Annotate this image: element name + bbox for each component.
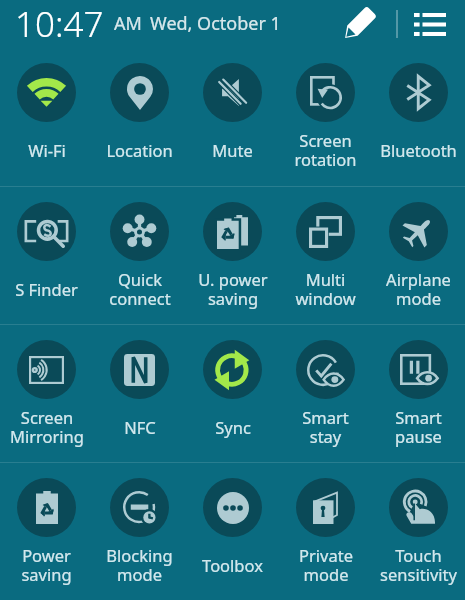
staticText: 10:47 — [15, 0, 104, 47]
staticText: Toolbox — [202, 554, 263, 576]
button[interactable]: Screen rotation — [279, 48, 372, 186]
button[interactable]: Power saving — [0, 463, 93, 600]
button[interactable]: Screen Mirroring — [0, 325, 93, 462]
staticText: S Finder — [15, 278, 78, 300]
button[interactable]: Toolbox — [186, 463, 279, 600]
staticText: Location — [106, 139, 173, 161]
button[interactable]: Smart pause — [372, 325, 465, 462]
button[interactable]: Show all settings — [410, 4, 450, 44]
button[interactable]: Quick connect — [93, 187, 186, 324]
button[interactable]: U. power saving — [186, 187, 279, 324]
button[interactable]: Smart stay — [279, 325, 372, 462]
staticText: Multi window — [295, 268, 356, 310]
button[interactable]: Sync — [186, 325, 279, 462]
button[interactable]: Multi window — [279, 187, 372, 324]
staticText: Blocking mode — [106, 544, 173, 586]
staticText: Mute — [212, 139, 253, 161]
staticText: Touch sensitivity — [380, 544, 457, 586]
staticText: U. power saving — [198, 268, 268, 310]
staticText: Wi-Fi — [28, 139, 66, 161]
button[interactable]: Location — [93, 48, 186, 186]
staticText: Smart pause — [395, 406, 442, 448]
staticText: Sync — [215, 416, 251, 438]
staticText: Screen Mirroring — [10, 406, 84, 448]
staticText: Screen rotation — [294, 129, 357, 171]
button[interactable]: NFC — [93, 325, 186, 462]
staticText: AM — [114, 11, 142, 36]
button[interactable]: S Finder — [0, 187, 93, 324]
staticText: Wed, October 1 — [150, 11, 281, 36]
button[interactable]: Mute — [186, 48, 279, 186]
button[interactable]: Bluetooth — [372, 48, 465, 186]
button[interactable]: Private mode — [279, 463, 372, 600]
button[interactable]: Edit quick settings — [336, 2, 380, 46]
button[interactable]: Wi-Fi — [0, 48, 93, 186]
staticText: Quick connect — [109, 268, 171, 310]
staticText: Private mode — [299, 544, 353, 586]
staticText: NFC — [124, 416, 156, 438]
staticText: Airplane mode — [386, 268, 451, 310]
button[interactable]: Blocking mode — [93, 463, 186, 600]
button[interactable]: Airplane mode — [372, 187, 465, 324]
staticText: Smart stay — [302, 406, 349, 448]
staticText: Bluetooth — [380, 139, 457, 161]
button[interactable]: Touch sensitivity — [372, 463, 465, 600]
staticText: Power saving — [21, 544, 72, 586]
